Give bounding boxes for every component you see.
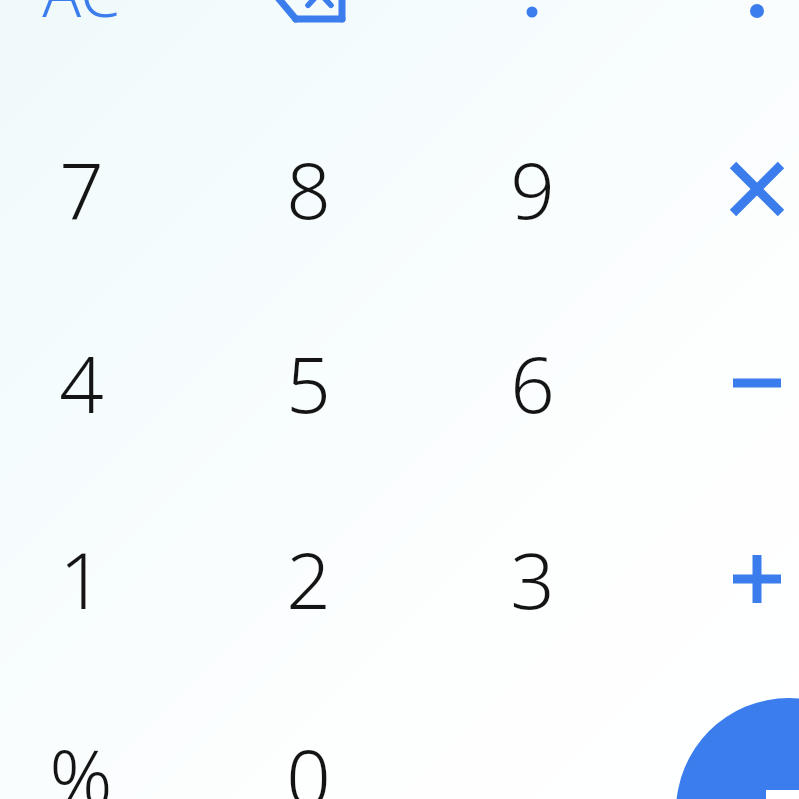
button[interactable]: 8 (201, 91, 415, 286)
button[interactable]: 4 (0, 285, 188, 480)
staticText: 8 (286, 136, 331, 242)
button[interactable]: 0 (201, 678, 415, 799)
staticText: 0 (286, 723, 331, 799)
button[interactable]: Dot (650, 0, 799, 90)
button[interactable]: Multiply (650, 91, 799, 286)
staticText: AC (42, 0, 120, 36)
button[interactable]: Divide (425, 0, 639, 90)
staticText: 1 (59, 526, 104, 632)
staticText: 9 (510, 136, 555, 242)
button[interactable]: Equals (676, 698, 799, 799)
staticText: 2 (286, 526, 331, 632)
button[interactable]: 7 (0, 91, 188, 286)
staticText: % (49, 723, 113, 799)
button[interactable]: Backspace (201, 0, 415, 90)
staticText: 3 (510, 526, 555, 632)
button[interactable]: 1 (0, 481, 188, 676)
staticText: 4 (59, 330, 104, 436)
button[interactable]: % (0, 678, 188, 799)
button[interactable]: AC (0, 0, 188, 90)
button[interactable]: 6 (425, 285, 639, 480)
button[interactable]: 3 (425, 481, 639, 676)
staticText: 7 (59, 136, 104, 242)
button[interactable]: Minus (650, 285, 799, 480)
button[interactable]: 2 (201, 481, 415, 676)
staticText: 5 (286, 330, 331, 436)
button[interactable]: 5 (201, 285, 415, 480)
button[interactable]: Plus (650, 481, 799, 676)
staticText: 6 (510, 330, 555, 436)
button[interactable]: 9 (425, 91, 639, 286)
